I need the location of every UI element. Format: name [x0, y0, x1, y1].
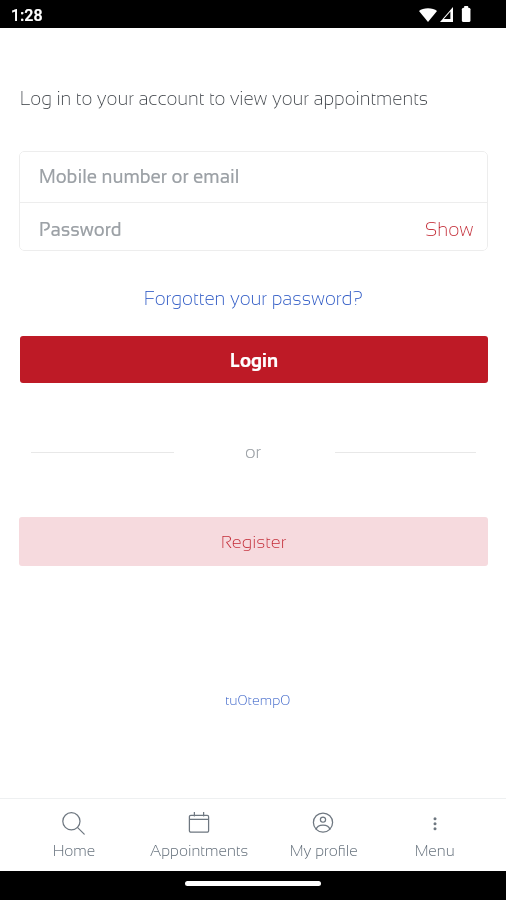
staticText: Register — [221, 532, 287, 552]
staticText: tu0temp0 — [225, 692, 291, 708]
button[interactable]: My profile — [260, 799, 387, 871]
staticText: Menu — [415, 842, 455, 859]
button[interactable]: Home — [11, 799, 138, 871]
staticText: Mobile number or email — [39, 166, 240, 187]
button[interactable]: Password — [19, 203, 488, 251]
staticText: 1:28 — [11, 6, 43, 25]
button[interactable]: Menu — [371, 799, 498, 871]
staticText: or — [245, 442, 262, 462]
staticText: Log in to your account to view your appo… — [20, 88, 429, 109]
button[interactable]: Appointments — [136, 799, 263, 871]
button[interactable]: Forgotten your password? — [144, 288, 363, 309]
button[interactable]: Show — [425, 219, 474, 240]
button[interactable]: Register — [19, 517, 488, 566]
staticText: Login — [230, 350, 279, 371]
button[interactable]: Login — [20, 336, 488, 383]
staticText: Appointments — [150, 842, 249, 859]
staticText: My profile — [290, 842, 358, 859]
staticText: Password — [39, 219, 425, 240]
button[interactable]: Mobile number or email — [19, 151, 488, 202]
staticText: Home — [53, 842, 96, 859]
